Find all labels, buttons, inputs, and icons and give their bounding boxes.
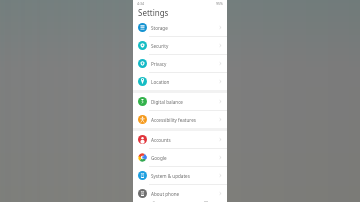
staticText: Digital balance <box>151 99 218 105</box>
button[interactable]: Google <box>133 149 227 166</box>
staticText: Accounts <box>151 137 218 143</box>
staticText: Storage <box>151 25 218 31</box>
button[interactable]: Privacy <box>133 55 227 72</box>
button[interactable]: Digital balance <box>133 93 227 110</box>
staticText: Privacy <box>151 61 218 67</box>
button[interactable]: System & updates <box>133 167 227 184</box>
staticText: Security <box>151 43 218 49</box>
staticText: Settings <box>138 7 169 18</box>
staticText: Google <box>151 155 218 161</box>
button[interactable]: Accounts <box>133 131 227 148</box>
button[interactable]: Security <box>133 37 227 54</box>
button[interactable]: Accessibility features <box>133 111 227 128</box>
staticText: Accessibility features <box>151 117 218 123</box>
staticText: System & updates <box>151 173 218 179</box>
button[interactable]: Location <box>133 73 227 90</box>
staticText: Location <box>151 79 218 85</box>
button[interactable]: About phone <box>133 185 227 202</box>
button[interactable]: Storage <box>133 19 227 36</box>
staticText: About phone <box>151 191 218 197</box>
staticText: 95% <box>216 1 223 6</box>
staticText: 4:34 <box>137 1 144 6</box>
